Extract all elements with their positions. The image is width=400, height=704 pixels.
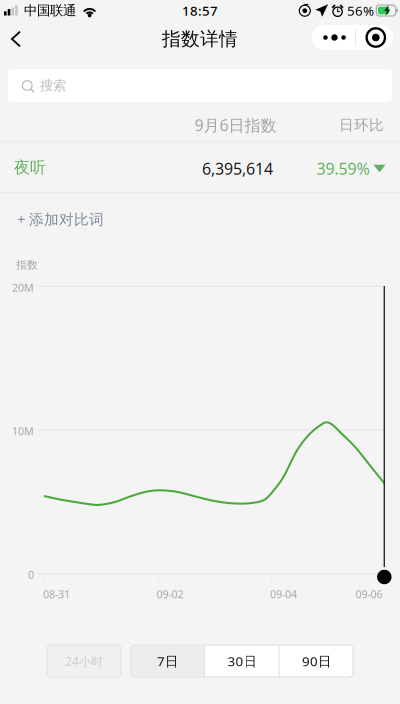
- staticText: 9月6日指数: [194, 114, 276, 136]
- staticText: 夜听: [14, 158, 46, 177]
- staticText: 24小时: [65, 653, 103, 669]
- staticText: 09-06: [355, 587, 382, 601]
- button[interactable]: Back: [0, 22, 32, 56]
- button[interactable]: + 添加对比词: [0, 199, 137, 239]
- staticText: 20M: [12, 280, 34, 295]
- staticText: 39.59%: [316, 158, 369, 179]
- staticText: 7日: [157, 652, 178, 670]
- button[interactable]: 30日: [205, 645, 279, 677]
- staticText: 日环比: [339, 116, 384, 134]
- button[interactable]: 7日: [131, 645, 204, 677]
- staticText: 中国联通: [24, 2, 76, 19]
- staticText: 0: [28, 567, 34, 582]
- staticText: 09-04: [270, 587, 297, 601]
- staticText: 90日: [302, 652, 331, 670]
- staticText: 56%: [347, 2, 374, 19]
- staticText: 09-02: [156, 587, 183, 601]
- staticText: 18:57: [182, 2, 218, 19]
- button[interactable]: More options: [312, 20, 393, 54]
- staticText: + 添加对比词: [17, 209, 104, 229]
- button[interactable]: 24小时: [47, 645, 121, 677]
- staticText: 08-31: [43, 587, 70, 601]
- staticText: 指数: [16, 258, 38, 271]
- button[interactable]: 90日: [280, 645, 353, 677]
- button[interactable]: 搜索: [8, 69, 392, 102]
- staticText: 搜索: [40, 77, 66, 94]
- staticText: 指数详情: [162, 27, 238, 50]
- staticText: 6,395,614: [202, 158, 273, 179]
- staticText: 30日: [227, 652, 256, 670]
- staticText: 10M: [12, 424, 34, 438]
